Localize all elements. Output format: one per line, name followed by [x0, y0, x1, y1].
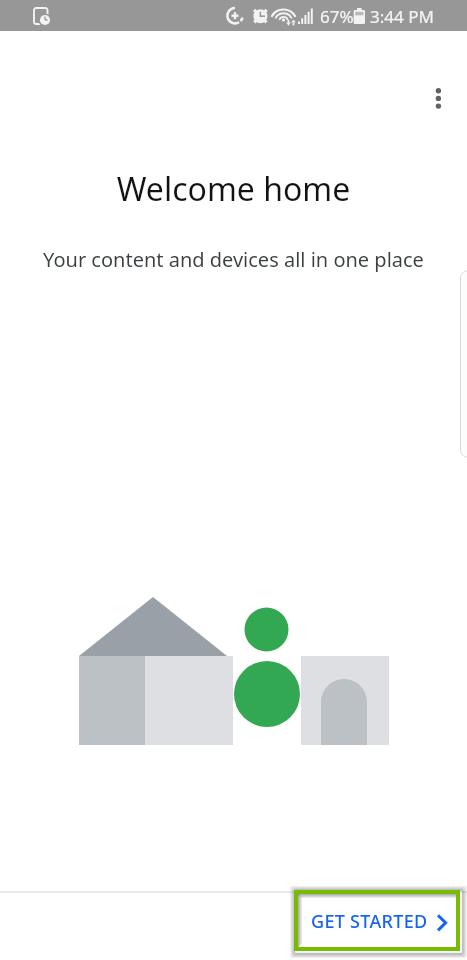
staticText: 67% [320, 5, 354, 28]
staticText: GET STARTED [311, 909, 428, 934]
button[interactable] [460, 270, 467, 458]
button[interactable]: GET STARTED [294, 890, 460, 951]
staticText: Your content and devices all in one plac… [0, 246, 467, 273]
staticText: Welcome home [0, 167, 467, 211]
button[interactable]: More options [414, 74, 462, 122]
staticText: 3:44 PM [370, 5, 434, 28]
